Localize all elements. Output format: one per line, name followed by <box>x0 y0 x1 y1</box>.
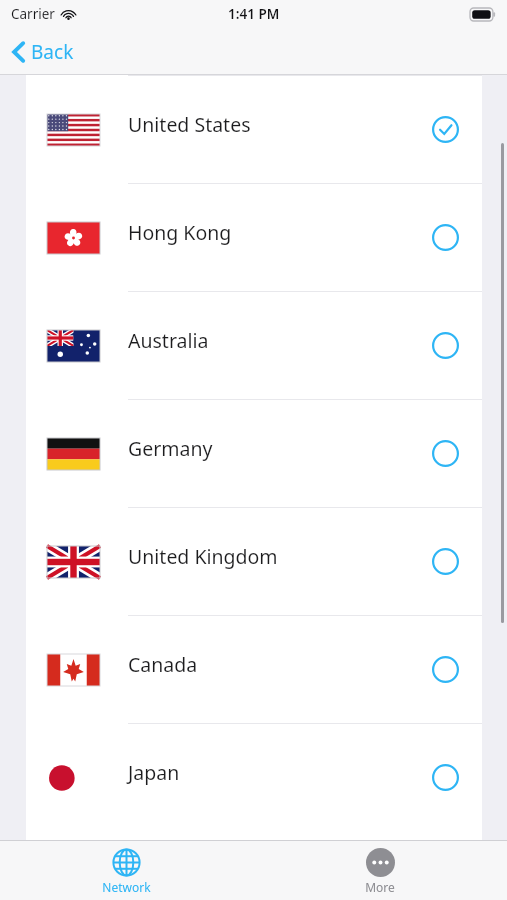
button[interactable]: Australia <box>26 292 482 399</box>
button[interactable]: Hong Kong <box>26 184 482 291</box>
button[interactable]: Select <box>428 652 462 686</box>
button[interactable]: United Kingdom <box>26 508 482 615</box>
button[interactable]: Selected <box>428 112 462 146</box>
button[interactable]: Network <box>0 841 253 900</box>
button[interactable]: Select <box>428 220 462 254</box>
staticText: Carrier <box>11 5 55 23</box>
button[interactable]: More <box>253 841 507 900</box>
staticText: Japan <box>128 759 180 786</box>
button[interactable]: United States <box>26 76 482 183</box>
button[interactable]: Select <box>428 760 462 794</box>
button[interactable]: Japan <box>26 724 482 831</box>
button[interactable]: Select <box>428 436 462 470</box>
staticText: United Kingdom <box>128 543 278 570</box>
button[interactable]: Canada <box>26 616 482 723</box>
staticText: Hong Kong <box>128 219 232 246</box>
staticText: More <box>365 879 395 895</box>
staticText: Australia <box>128 327 209 354</box>
staticText: United States <box>128 111 251 138</box>
staticText: Germany <box>128 435 213 462</box>
button[interactable]: Back <box>6 33 80 71</box>
button[interactable]: Select <box>428 328 462 362</box>
button[interactable]: Select <box>428 544 462 578</box>
staticText: Canada <box>128 651 198 678</box>
staticText: Back <box>31 39 74 65</box>
staticText: Network <box>102 879 151 895</box>
staticText: 1:41 PM <box>228 5 280 23</box>
button[interactable]: Germany <box>26 400 482 507</box>
